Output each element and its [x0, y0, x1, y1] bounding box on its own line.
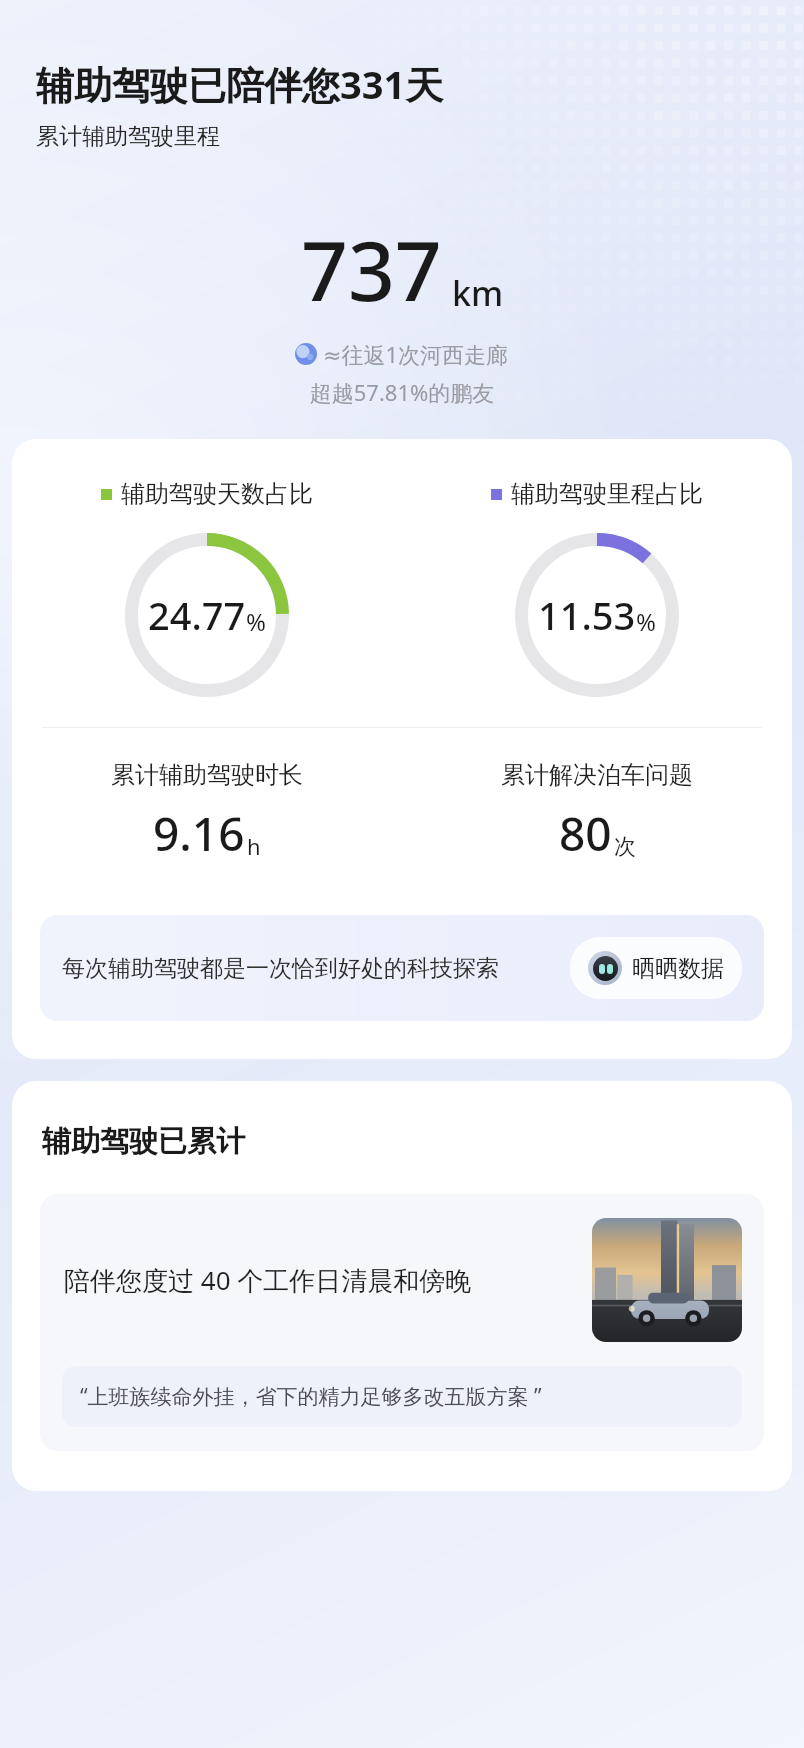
other: Globe	[295, 343, 317, 365]
staticText: 陪伴您度过 40 个工作日清晨和傍晚	[64, 1262, 574, 1298]
staticText: 辅助驾驶已累计	[42, 1123, 245, 1160]
staticText: 次	[614, 833, 636, 861]
staticText: 80	[559, 802, 612, 865]
staticText: ≈往返1次河西走廊	[323, 339, 509, 369]
staticText: 辅助驾驶已陪伴您331天	[36, 58, 444, 110]
staticText: km	[452, 270, 504, 316]
staticText: 辅助驾驶天数占比	[121, 479, 313, 509]
staticText: 737	[301, 213, 442, 325]
staticText: 累计辅助驾驶时长	[111, 760, 303, 790]
staticText: 9.16	[153, 802, 245, 865]
staticText: 11.53	[538, 589, 636, 641]
staticText: 晒晒数据	[632, 954, 724, 983]
button[interactable]: 晒晒数据	[570, 937, 742, 999]
staticText: 24.77	[148, 589, 246, 641]
staticText: 超越57.81%的鹏友	[0, 377, 804, 407]
staticText: h	[247, 831, 261, 861]
staticText: “上班族续命外挂，省下的精力足够多改五版方案 ”	[80, 1382, 542, 1411]
staticText: %	[636, 605, 656, 638]
staticText: 累计辅助驾驶里程	[36, 122, 220, 151]
staticText: 每次辅助驾驶都是一次恰到好处的科技探索	[62, 954, 554, 983]
staticText: 累计解决泊车问题	[501, 760, 693, 790]
staticText: 辅助驾驶里程占比	[511, 479, 703, 509]
staticText: %	[246, 605, 266, 638]
